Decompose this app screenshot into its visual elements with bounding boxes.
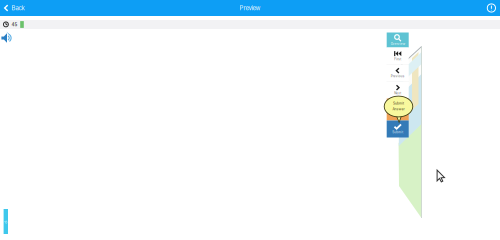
staticText: Previous <box>391 74 405 78</box>
staticText: Back <box>11 4 24 12</box>
staticText: Answer <box>392 107 404 111</box>
button[interactable]: Feedback <box>4 209 8 234</box>
button[interactable]: Flag question <box>387 98 409 120</box>
button[interactable]: First <box>387 47 409 64</box>
staticText: Submit <box>392 130 403 134</box>
button[interactable]: Next <box>387 81 409 98</box>
button[interactable]: Overview <box>387 32 409 47</box>
staticText: Feedback <box>4 207 8 236</box>
staticText: First <box>394 57 401 61</box>
staticText: 45 <box>12 22 18 27</box>
staticText: Next <box>394 91 401 95</box>
button[interactable]: Previous <box>387 64 409 81</box>
staticText: Submit <box>393 101 404 105</box>
button[interactable]: Information <box>484 0 500 16</box>
button[interactable]: Submit <box>387 120 409 137</box>
staticText: Preview <box>239 4 260 12</box>
staticText: Overview <box>391 42 405 46</box>
button[interactable]: Back <box>0 0 26 16</box>
